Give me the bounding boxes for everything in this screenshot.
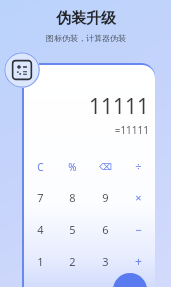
button[interactable]: 1	[24, 245, 56, 277]
button[interactable]: ×	[122, 182, 155, 213]
staticText: 9	[102, 190, 109, 205]
staticText: 8	[69, 190, 76, 205]
staticText: 3	[102, 254, 109, 269]
staticText: 2	[69, 254, 76, 269]
staticText: 图标伪装，计算器伪装	[46, 33, 126, 43]
button[interactable]: −	[122, 213, 155, 245]
button[interactable]: +	[122, 245, 155, 277]
button[interactable]: 5	[56, 213, 89, 245]
staticText: =11111	[114, 123, 149, 137]
button[interactable]: 7	[24, 182, 56, 213]
staticText: +	[135, 253, 142, 269]
button[interactable]: 3	[89, 245, 122, 277]
button[interactable]: ÷	[122, 151, 155, 182]
staticText: 5	[69, 222, 76, 237]
staticText: 11111	[88, 92, 149, 121]
button[interactable]: 4	[24, 213, 56, 245]
staticText: %	[68, 160, 77, 174]
button[interactable]: 6	[89, 213, 122, 245]
staticText: 伪装升级	[56, 9, 116, 28]
button[interactable]: ⌫	[89, 151, 122, 182]
staticText: 4	[37, 222, 44, 237]
staticText: 6	[102, 222, 109, 237]
staticText: ⌫	[99, 162, 112, 172]
button[interactable]: Equals	[113, 273, 147, 287]
button[interactable]: Calculator disguise icon	[4, 52, 40, 88]
staticText: C	[37, 160, 44, 174]
staticText: ×	[135, 190, 142, 205]
staticText: −	[135, 222, 142, 237]
staticText: ÷	[135, 159, 142, 174]
button[interactable]: 9	[89, 182, 122, 213]
staticText: 7	[37, 190, 44, 205]
button[interactable]: 8	[56, 182, 89, 213]
staticText: 1	[37, 254, 44, 269]
button[interactable]: 2	[56, 245, 89, 277]
button[interactable]: C	[24, 151, 56, 182]
button[interactable]: %	[56, 151, 89, 182]
